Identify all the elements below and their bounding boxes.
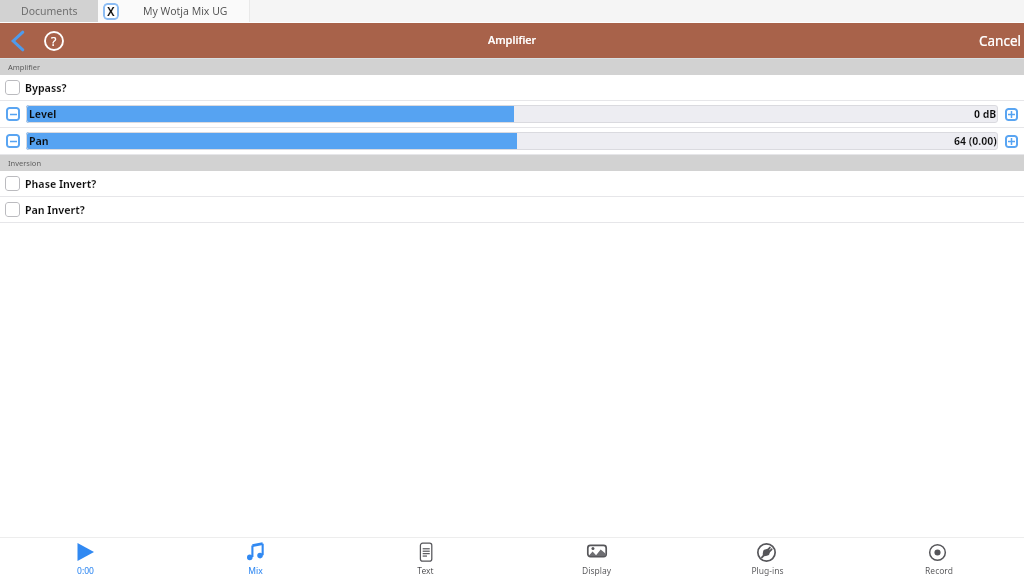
button[interactable]: Pan bbox=[26, 132, 998, 150]
button[interactable]: Help bbox=[41, 28, 67, 54]
button[interactable]: Plug-ins bbox=[682, 538, 853, 576]
button[interactable]: Cancel bbox=[977, 32, 1024, 50]
staticText: Phase Invert? bbox=[25, 177, 97, 191]
button[interactable]: Phase Invert? bbox=[0, 171, 1024, 196]
button[interactable]: Text bbox=[340, 538, 511, 576]
button[interactable]: Level bbox=[26, 105, 998, 123]
button[interactable]: Bypass? bbox=[0, 75, 1024, 100]
staticText: Cancel bbox=[979, 32, 1022, 50]
staticText: Display bbox=[582, 565, 611, 576]
staticText: Mix bbox=[248, 565, 263, 576]
button[interactable]: Pan Invert? bbox=[0, 197, 1024, 222]
staticText: Pan Invert? bbox=[25, 203, 85, 217]
staticText: 64 (0.00) bbox=[954, 134, 997, 148]
staticText: Inversion bbox=[8, 158, 42, 168]
staticText: Amplifier bbox=[488, 32, 537, 47]
button[interactable]: Increase Pan bbox=[1005, 135, 1018, 148]
staticText: Plug-ins bbox=[751, 565, 784, 576]
staticText: 0:00 bbox=[77, 565, 94, 576]
staticText: Pan bbox=[29, 134, 49, 148]
button[interactable]: Back bbox=[5, 28, 31, 54]
staticText: 0 dB bbox=[974, 107, 997, 121]
staticText: Amplifier bbox=[8, 62, 41, 72]
button[interactable]: Decrease Pan bbox=[6, 134, 20, 148]
staticText: Level bbox=[29, 107, 57, 121]
staticText: X bbox=[107, 4, 115, 20]
staticText: My Wotja Mix UG bbox=[143, 4, 228, 18]
staticText: Bypass? bbox=[25, 81, 67, 95]
button[interactable]: Close document bbox=[98, 0, 250, 22]
staticText: Text bbox=[417, 565, 434, 576]
staticText: Record bbox=[925, 565, 953, 576]
button[interactable]: 0:00 bbox=[0, 538, 170, 576]
button[interactable]: Increase Level bbox=[1005, 108, 1018, 121]
button[interactable]: Display bbox=[511, 538, 682, 576]
button[interactable]: Mix bbox=[170, 538, 340, 576]
staticText: Documents bbox=[21, 4, 78, 18]
button[interactable]: Documents bbox=[0, 0, 98, 22]
button[interactable]: Record bbox=[853, 538, 1024, 576]
staticText: ? bbox=[51, 33, 57, 50]
button[interactable]: Close document bbox=[103, 3, 119, 20]
button[interactable]: Decrease Level bbox=[6, 107, 20, 121]
